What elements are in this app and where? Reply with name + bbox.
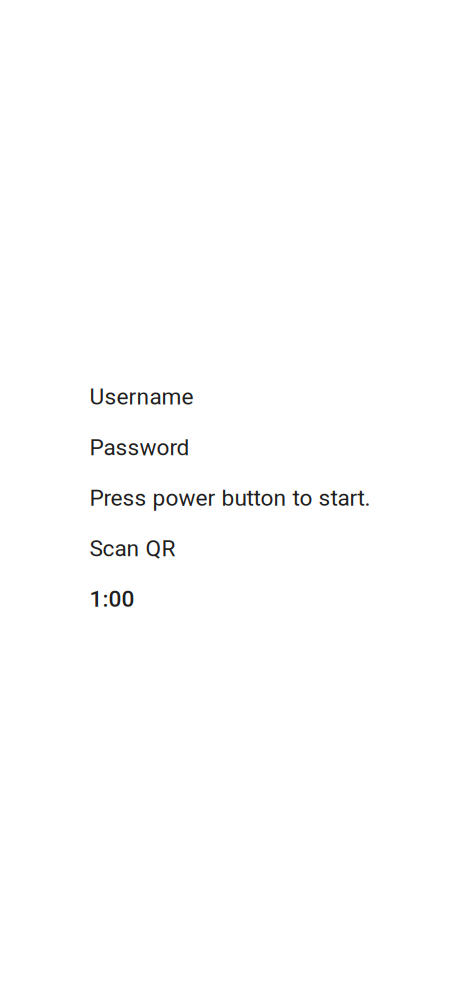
staticText: Password	[89, 434, 189, 461]
staticText: Press power button to start.	[89, 485, 370, 511]
staticText: Scan QR	[89, 535, 175, 562]
staticText: Username	[89, 384, 193, 410]
staticText: 1:00	[89, 586, 134, 612]
